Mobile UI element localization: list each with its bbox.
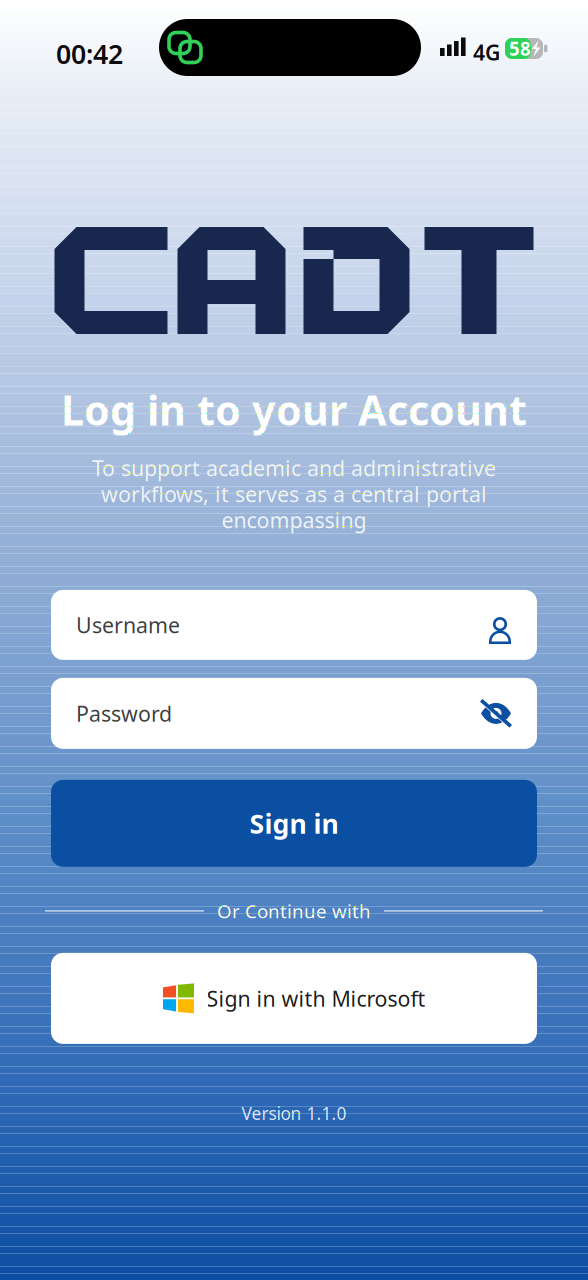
- staticText: Sign in with Microsoft: [206, 984, 425, 1012]
- staticText: workflows, it serves as a central portal: [101, 480, 487, 508]
- staticText: encompassing: [221, 506, 366, 534]
- button[interactable]: Password: [51, 678, 537, 749]
- staticText: To support academic and administrative: [92, 454, 496, 482]
- staticText: Log in to your Account: [61, 382, 527, 437]
- staticText: Sign in: [249, 806, 338, 841]
- staticText: 58: [509, 36, 531, 61]
- button[interactable]: Username: [51, 590, 537, 660]
- staticText: Or Continue with: [217, 898, 371, 923]
- staticText: 4G: [473, 38, 500, 66]
- button[interactable]: Sign in with Microsoft: [51, 953, 537, 1044]
- staticText: Version 1.1.0: [241, 1102, 346, 1125]
- staticText: Password: [76, 699, 172, 727]
- staticText: Username: [76, 611, 180, 639]
- button[interactable]: Sign in: [51, 780, 537, 867]
- staticText: 00:42: [56, 36, 123, 71]
